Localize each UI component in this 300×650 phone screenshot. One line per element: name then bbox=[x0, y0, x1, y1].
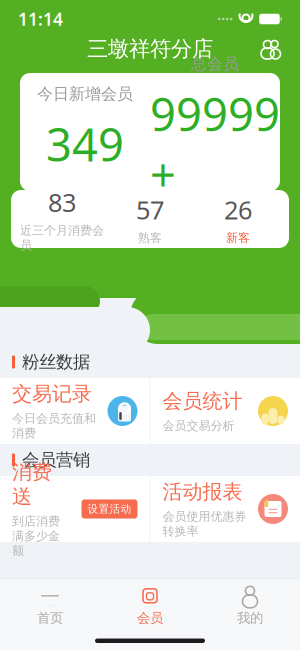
button[interactable]: 会员 bbox=[248, 31, 292, 67]
staticText: 新客 bbox=[226, 230, 250, 245]
button[interactable]: 我的 bbox=[200, 582, 300, 628]
button[interactable]: 首页 bbox=[0, 582, 100, 628]
staticText: 99999+ bbox=[150, 84, 280, 204]
staticText: 会员营销 bbox=[22, 449, 90, 471]
staticText: 粉丝数据 bbox=[22, 351, 90, 373]
staticText: 83 bbox=[48, 185, 76, 219]
staticText: 到店消费满多少金额 bbox=[12, 514, 60, 558]
staticText: 三墩祥符分店 bbox=[87, 36, 213, 62]
staticText: 熟客 bbox=[138, 230, 162, 245]
staticText: 总会员 bbox=[191, 54, 239, 74]
staticText: 会员使用优惠券转换率 bbox=[162, 509, 246, 538]
staticText: 设置活动 bbox=[87, 502, 131, 515]
button[interactable]: 交易记录 bbox=[0, 378, 149, 444]
staticText: 首页 bbox=[37, 610, 63, 626]
staticText: 今日新增会员 bbox=[37, 84, 133, 104]
staticText: 我的 bbox=[237, 610, 263, 626]
button[interactable]: 消费送 bbox=[0, 476, 149, 542]
button[interactable]: 活动报表 bbox=[150, 476, 300, 542]
staticText: 近三个月消费会员 bbox=[20, 223, 104, 253]
staticText: 今日会员充值和消费 bbox=[12, 411, 96, 440]
staticText: 消费送 bbox=[12, 460, 52, 509]
staticText: 349 bbox=[46, 114, 124, 174]
staticText: 会员交易分析 bbox=[162, 418, 234, 433]
staticText: 会员统计 bbox=[162, 389, 242, 413]
staticText: 57 bbox=[136, 193, 164, 226]
staticText: 11:14 bbox=[18, 7, 63, 30]
staticText: 会员 bbox=[137, 610, 163, 626]
staticText: 26 bbox=[224, 193, 252, 226]
button[interactable]: 会员 bbox=[100, 582, 200, 628]
staticText: 交易记录 bbox=[12, 381, 92, 406]
button[interactable]: 会员统计 bbox=[150, 378, 300, 444]
staticText: 活动报表 bbox=[162, 479, 242, 504]
